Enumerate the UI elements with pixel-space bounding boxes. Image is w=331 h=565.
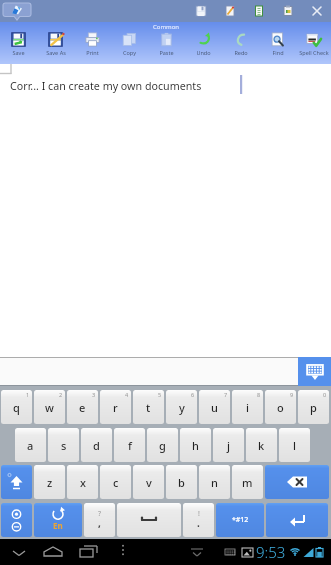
button[interactable]: Symbols <box>216 503 264 537</box>
staticText: En <box>53 520 63 531</box>
staticText: Paste <box>159 49 174 56</box>
button[interactable]: ! <box>183 503 214 537</box>
button[interactable]: h <box>180 428 211 462</box>
button[interactable]: Recent apps <box>76 539 102 565</box>
staticText: ! <box>198 509 200 519</box>
staticText: p <box>310 400 317 415</box>
button[interactable]: Redo <box>222 22 259 64</box>
button[interactable]: l <box>279 428 310 462</box>
button[interactable]: Find <box>259 22 296 64</box>
button[interactable]: x <box>67 465 98 499</box>
button[interactable]: d <box>81 428 112 462</box>
staticText: *#12 <box>232 515 249 525</box>
staticText: t <box>146 400 151 415</box>
staticText: z <box>47 475 53 490</box>
staticText: c <box>113 475 119 490</box>
staticText: 5 <box>158 391 162 398</box>
staticText: u <box>211 400 218 415</box>
button[interactable]: v <box>133 465 164 499</box>
staticText: w <box>45 400 54 415</box>
button[interactable]: 7 <box>199 390 230 424</box>
button[interactable]: g <box>147 428 178 462</box>
staticText: 4 <box>125 391 129 398</box>
button[interactable]: Backspace <box>265 465 329 499</box>
staticText: a <box>27 438 34 453</box>
staticText: Corr... I can create my own documents <box>10 79 202 94</box>
staticText: Undo <box>196 49 211 56</box>
button[interactable]: n <box>199 465 230 499</box>
button[interactable]: Settings <box>1 503 32 537</box>
button[interactable]: 2 <box>34 390 65 424</box>
staticText: m <box>242 475 253 490</box>
staticText: i <box>246 400 249 415</box>
staticText: Find <box>272 49 284 56</box>
staticText: 8 <box>257 391 261 398</box>
button[interactable]: New document <box>253 5 265 17</box>
button[interactable]: c <box>100 465 131 499</box>
button[interactable]: ? <box>84 503 115 537</box>
staticText: . <box>197 516 200 530</box>
staticText: ? <box>98 509 102 519</box>
staticText: y <box>179 400 185 415</box>
button[interactable]: 5 <box>133 390 164 424</box>
button[interactable]: Spell Check <box>296 22 331 64</box>
button[interactable]: Undo <box>185 22 222 64</box>
button[interactable]: a <box>15 428 46 462</box>
staticText: 9:53 <box>256 542 286 562</box>
staticText: 3 <box>92 391 96 398</box>
staticText: Spell Check <box>299 49 329 56</box>
staticText: 6 <box>191 391 195 398</box>
staticText: l <box>293 438 296 453</box>
staticText: d <box>93 438 100 453</box>
button[interactable]: Clipboard <box>282 5 294 17</box>
button[interactable]: f <box>114 428 145 462</box>
staticText: Save <box>12 49 25 56</box>
staticText: , <box>98 516 101 530</box>
button[interactable]: Save <box>195 5 207 17</box>
button[interactable]: Copy <box>111 22 148 64</box>
button[interactable]: Save <box>0 22 37 64</box>
button[interactable]: Enter <box>266 503 328 537</box>
button[interactable]: s <box>48 428 79 462</box>
button[interactable]: Paste <box>148 22 185 64</box>
button[interactable]: b <box>166 465 197 499</box>
button[interactable]: Menu <box>112 539 134 561</box>
button[interactable]: 6 <box>166 390 197 424</box>
button[interactable]: Shift <box>1 465 32 499</box>
staticText: s <box>61 438 67 453</box>
staticText: b <box>178 475 185 490</box>
staticText: e <box>79 400 86 415</box>
button[interactable]: 3 <box>67 390 98 424</box>
button[interactable]: Edit <box>224 5 236 17</box>
button[interactable]: 1 <box>1 390 32 424</box>
button[interactable]: Space <box>117 503 181 537</box>
button[interactable]: 8 <box>232 390 263 424</box>
staticText: r <box>113 400 118 415</box>
staticText: 7 <box>224 391 228 398</box>
button[interactable]: m <box>232 465 263 499</box>
button[interactable]: Home <box>40 539 66 565</box>
button[interactable]: j <box>213 428 244 462</box>
button[interactable]: Language <box>34 503 82 537</box>
button[interactable]: Print <box>74 22 111 64</box>
button[interactable]: 4 <box>100 390 131 424</box>
staticText: g <box>159 438 166 453</box>
button[interactable]: 9 <box>265 390 296 424</box>
staticText: 1 <box>26 391 30 398</box>
staticText: Common <box>153 23 179 31</box>
button[interactable]: Save As <box>37 22 74 64</box>
staticText: 9 <box>290 391 294 398</box>
staticText: k <box>258 438 265 453</box>
button[interactable]: Hide keyboard <box>298 357 331 386</box>
button[interactable]: k <box>246 428 277 462</box>
button[interactable]: z <box>34 465 65 499</box>
staticText: h <box>192 438 199 453</box>
staticText: q <box>13 400 20 415</box>
staticText: 2 <box>59 391 63 398</box>
button[interactable]: Back <box>6 539 32 565</box>
staticText: o <box>277 400 284 415</box>
button[interactable]: 0 <box>298 390 329 424</box>
staticText: f <box>128 438 132 453</box>
button[interactable]: Document tab <box>3 3 31 20</box>
button[interactable]: Close <box>311 5 323 17</box>
